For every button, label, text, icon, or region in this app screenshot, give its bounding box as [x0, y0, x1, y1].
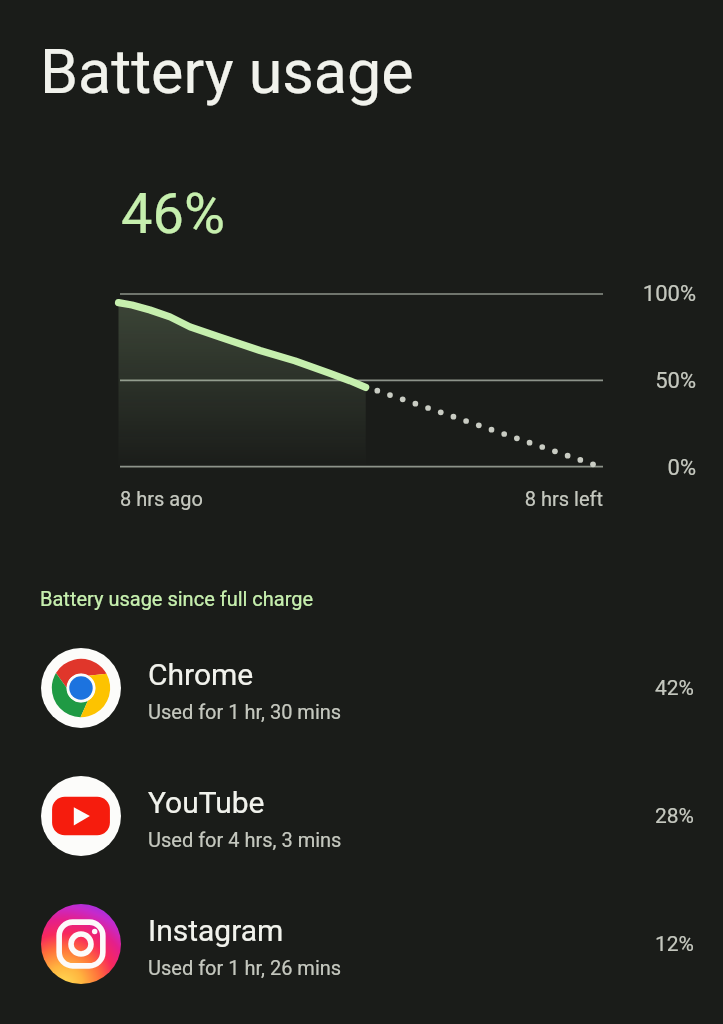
- staticText: 8 hrs left: [403, 487, 603, 510]
- staticText: 42%: [655, 676, 694, 701]
- staticText: 100%: [596, 281, 696, 307]
- staticText: YouTube: [148, 785, 265, 820]
- staticText: Battery usage since full charge: [40, 587, 314, 610]
- staticText: 8 hrs ago: [120, 487, 203, 510]
- staticText: Chrome: [148, 657, 254, 692]
- staticText: Used for 1 hr, 30 mins: [148, 700, 342, 723]
- staticText: 0%: [596, 455, 696, 481]
- staticText: 28%: [655, 804, 694, 829]
- button[interactable]: Chrome: [0, 624, 723, 752]
- staticText: 12%: [655, 932, 694, 957]
- staticText: Used for 4 hrs, 3 mins: [148, 828, 342, 851]
- staticText: 46%: [121, 181, 225, 247]
- button[interactable]: Instagram: [0, 880, 723, 1008]
- button[interactable]: YouTube: [0, 752, 723, 880]
- staticText: Used for 1 hr, 26 mins: [148, 956, 342, 979]
- staticText: 50%: [596, 368, 696, 394]
- staticText: Instagram: [148, 913, 284, 948]
- staticText: Battery usage: [40, 36, 414, 107]
